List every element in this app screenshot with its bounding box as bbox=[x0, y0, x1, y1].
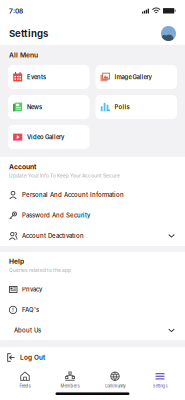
button[interactable]: Image Gallery bbox=[95, 65, 177, 89]
staticText: Polls bbox=[114, 103, 129, 111]
staticText: Personal And Account Information bbox=[22, 191, 124, 199]
staticText: FAQ's bbox=[22, 306, 39, 314]
button[interactable]: About Us bbox=[0, 320, 185, 341]
button[interactable]: Community bbox=[95, 368, 135, 392]
staticText: Feeds bbox=[19, 383, 30, 388]
staticText: Account Deactivation bbox=[22, 232, 84, 240]
staticText: Account bbox=[9, 163, 36, 171]
button[interactable]: Video Gallery bbox=[8, 125, 89, 149]
button[interactable]: Events bbox=[8, 65, 89, 89]
staticText: Members bbox=[60, 383, 79, 388]
button[interactable]: Password And Security bbox=[0, 205, 185, 226]
staticText: Events bbox=[27, 73, 46, 81]
staticText: Privacy bbox=[22, 286, 42, 293]
staticText: Password And Security bbox=[22, 212, 90, 219]
staticText: Settings bbox=[152, 383, 167, 388]
button[interactable]: Members bbox=[50, 368, 90, 392]
button[interactable]: News bbox=[8, 95, 89, 119]
staticText: About Us bbox=[14, 327, 41, 334]
button[interactable]: Feeds bbox=[5, 368, 45, 392]
staticText: Community bbox=[104, 383, 125, 388]
button[interactable]: Log Out bbox=[0, 347, 185, 368]
button[interactable]: FAQ's bbox=[0, 300, 185, 320]
button[interactable]: Personal And Account Information bbox=[0, 185, 185, 205]
button[interactable]: Settings bbox=[140, 368, 180, 392]
staticText: All Menu bbox=[9, 51, 38, 59]
staticText: Update Your Info To Keep Your Account Se… bbox=[9, 173, 120, 179]
staticText: Queries related to the app bbox=[9, 267, 71, 273]
button[interactable]: Profile bbox=[161, 26, 176, 41]
staticText: Help bbox=[9, 257, 24, 265]
staticText: Log Out bbox=[20, 354, 45, 361]
staticText: Video Gallery bbox=[27, 133, 64, 141]
staticText: Settings bbox=[9, 28, 48, 39]
staticText: News bbox=[27, 103, 42, 111]
button[interactable]: Polls bbox=[95, 95, 177, 119]
button[interactable]: Privacy bbox=[0, 279, 185, 300]
staticText: 7:08 bbox=[9, 7, 23, 15]
button[interactable]: Account Deactivation bbox=[0, 226, 185, 246]
staticText: Image Gallery bbox=[114, 73, 151, 81]
